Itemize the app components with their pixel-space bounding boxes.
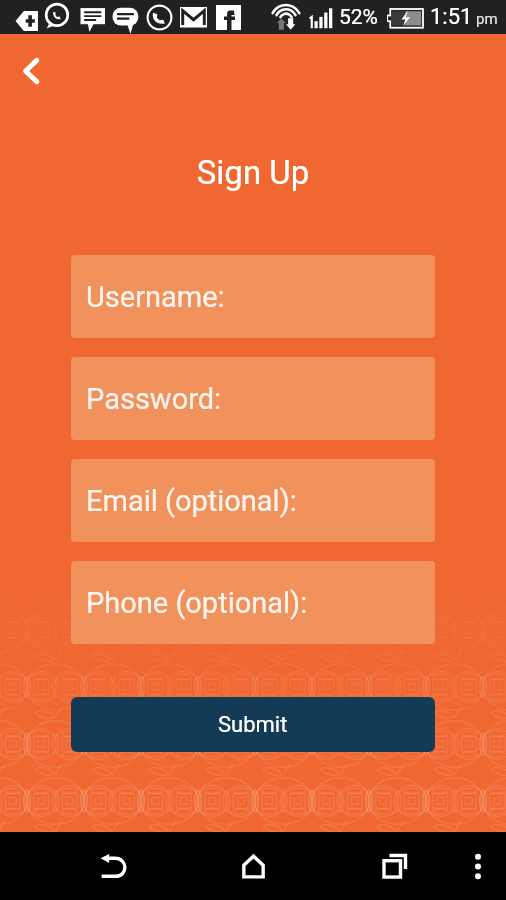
button[interactable]: More options	[452, 832, 504, 900]
button[interactable]: Back	[9, 49, 53, 93]
staticText: Phone (optional):	[86, 586, 308, 620]
staticText: 52%	[339, 5, 378, 30]
staticText: Username:	[86, 280, 225, 314]
staticText: Submit	[218, 712, 288, 738]
button[interactable]: Username:	[71, 255, 435, 338]
button[interactable]: Home	[219, 832, 287, 900]
button[interactable]: Recent apps	[360, 832, 428, 900]
staticText: Password:	[86, 382, 222, 416]
staticText: Email (optional):	[86, 484, 297, 518]
button[interactable]: Back	[79, 832, 147, 900]
staticText: 1:51	[430, 4, 473, 30]
button[interactable]: Email (optional):	[71, 459, 435, 542]
button[interactable]: Submit	[71, 697, 435, 752]
button[interactable]: Password:	[71, 357, 435, 440]
staticText: pm	[476, 10, 498, 28]
staticText: Sign Up	[0, 153, 506, 192]
button[interactable]: Phone (optional):	[71, 561, 435, 644]
